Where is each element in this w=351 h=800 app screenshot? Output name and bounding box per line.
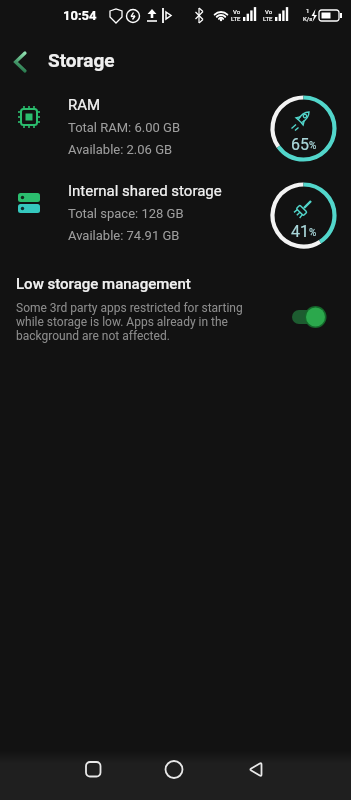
button[interactable] bbox=[154, 752, 196, 798]
staticText: K/s bbox=[303, 15, 313, 22]
staticText: Available: 74.91 GB bbox=[68, 228, 180, 243]
staticText: RAM bbox=[68, 96, 101, 114]
staticText: Internal shared storage bbox=[68, 182, 222, 200]
staticText: 41 bbox=[291, 222, 309, 241]
staticText: Low storage management bbox=[16, 275, 191, 293]
button[interactable] bbox=[236, 752, 278, 798]
staticText: Total RAM: 6.00 GB bbox=[68, 120, 180, 135]
button[interactable] bbox=[72, 752, 114, 798]
staticText: LTE bbox=[263, 15, 273, 22]
button[interactable] bbox=[292, 305, 328, 329]
button[interactable]: RAM bbox=[0, 90, 351, 170]
staticText: 65 bbox=[291, 135, 309, 154]
button[interactable]: Low storage management bbox=[0, 272, 351, 356]
button[interactable]: Internal shared storage bbox=[0, 178, 351, 258]
staticText: Storage bbox=[48, 49, 115, 71]
button[interactable]: 65 bbox=[270, 95, 337, 162]
staticText: Vo bbox=[265, 8, 273, 15]
staticText: Some 3rd party apps restricted for start… bbox=[16, 301, 243, 343]
staticText: LTE bbox=[231, 15, 241, 22]
staticText: Available: 2.06 GB bbox=[68, 142, 173, 157]
staticText: 10:54 bbox=[63, 8, 97, 23]
staticText: Total space: 128 GB bbox=[68, 206, 184, 221]
button[interactable]: 41 bbox=[270, 182, 337, 249]
button[interactable] bbox=[8, 48, 36, 76]
staticText: % bbox=[309, 227, 317, 239]
staticText: % bbox=[309, 140, 317, 152]
staticText: 1 bbox=[306, 7, 310, 14]
staticText: Vo bbox=[233, 8, 241, 15]
